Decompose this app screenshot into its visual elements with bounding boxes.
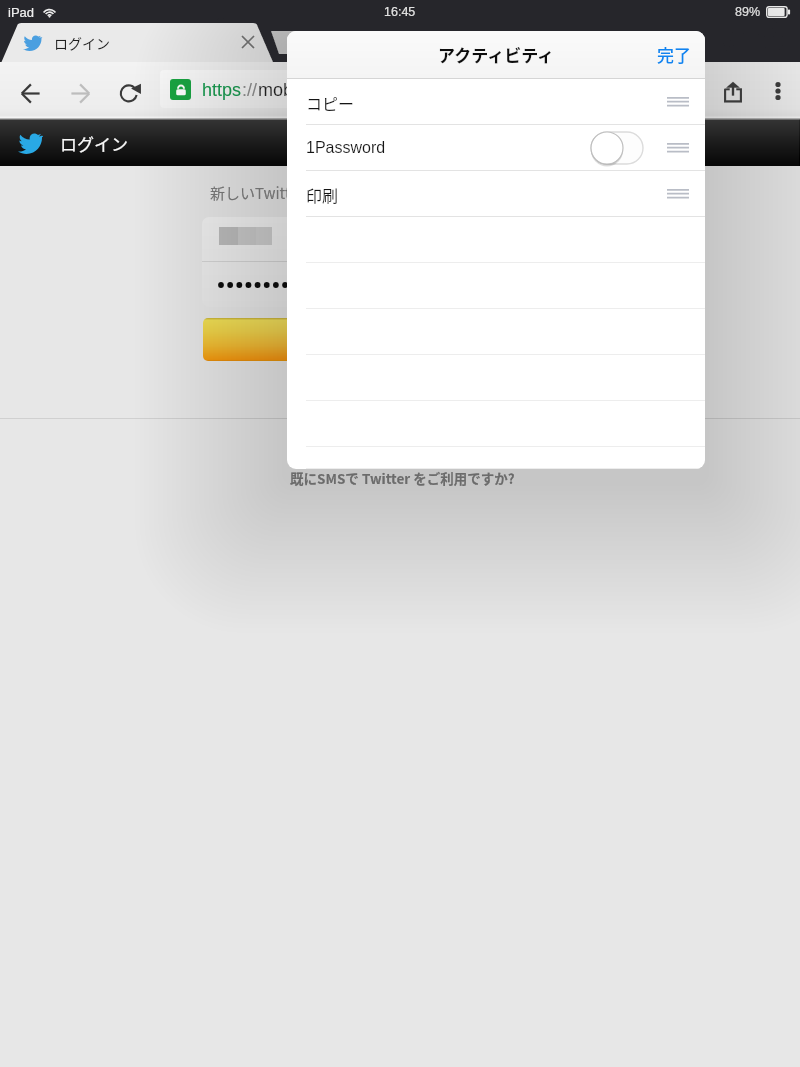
staticText: mobile.twitter.com/login	[258, 80, 446, 100]
staticText: https	[202, 80, 242, 100]
button[interactable]: Close tab	[234, 28, 262, 56]
staticText: 新しいTwitterアカウントを作成	[210, 182, 425, 204]
staticText: ログイン	[54, 33, 110, 53]
button[interactable]: 1Password	[287, 125, 705, 171]
staticText: iPad	[8, 5, 35, 20]
staticText: 16:45	[384, 5, 416, 19]
staticText: 既にSMSで Twitter をご利用ですか?	[290, 468, 515, 488]
button[interactable]: Back	[14, 77, 46, 109]
staticText: アクティビティ	[438, 42, 555, 67]
button[interactable]: コピー	[287, 79, 705, 125]
button[interactable]: https	[160, 70, 700, 108]
staticText: コピー	[306, 91, 355, 114]
staticText: 完了	[657, 42, 691, 67]
button[interactable]: 1Password toggle	[590, 131, 644, 165]
staticText: 印刷	[306, 183, 339, 206]
staticText: ://	[242, 80, 258, 100]
staticText: 89%	[735, 5, 761, 19]
button[interactable]: Reload	[114, 77, 146, 109]
button[interactable]: 印刷	[287, 171, 705, 217]
button[interactable]: 完了	[643, 31, 705, 78]
button[interactable]: Login	[203, 318, 501, 361]
button[interactable]: More options	[762, 75, 794, 107]
staticText: ログイン	[60, 131, 128, 156]
staticText: 1Password	[306, 139, 386, 157]
button[interactable]: Share	[717, 75, 749, 107]
button[interactable]: Forward	[64, 77, 96, 109]
